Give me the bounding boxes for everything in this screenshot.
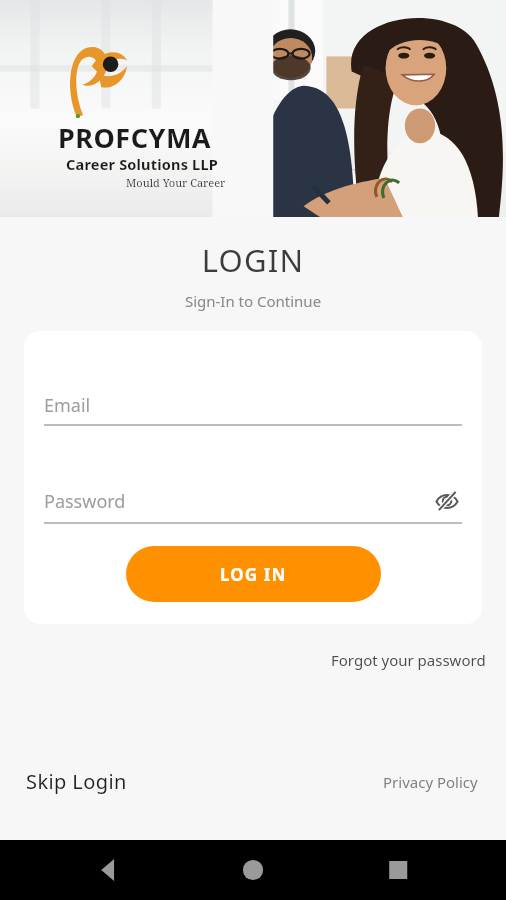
button[interactable]: Privacy Policy: [383, 768, 478, 796]
staticText: Mould Your Career: [126, 175, 226, 190]
button[interactable]: Recent apps: [368, 840, 428, 900]
button[interactable]: Password: [44, 486, 462, 524]
staticText: Career Solutions LLP: [66, 154, 218, 174]
staticText: Privacy Policy: [383, 772, 478, 792]
staticText: LOGIN: [0, 239, 506, 281]
staticText: PROFCYMA: [58, 119, 212, 156]
button[interactable]: Email: [44, 393, 462, 426]
staticText: LOG IN: [220, 563, 287, 586]
staticText: Forgot your password: [331, 650, 486, 670]
button[interactable]: Skip Login: [26, 764, 127, 799]
button[interactable]: LOG IN: [126, 546, 381, 602]
button[interactable]: Show password: [432, 486, 462, 516]
button[interactable]: Forgot your password: [329, 646, 488, 674]
button[interactable]: Home: [223, 840, 283, 900]
staticText: Password: [44, 489, 432, 514]
staticText: Skip Login: [26, 768, 127, 795]
staticText: Email: [44, 393, 462, 418]
staticText: Sign-In to Continue: [0, 291, 506, 311]
button[interactable]: Back: [77, 840, 137, 900]
